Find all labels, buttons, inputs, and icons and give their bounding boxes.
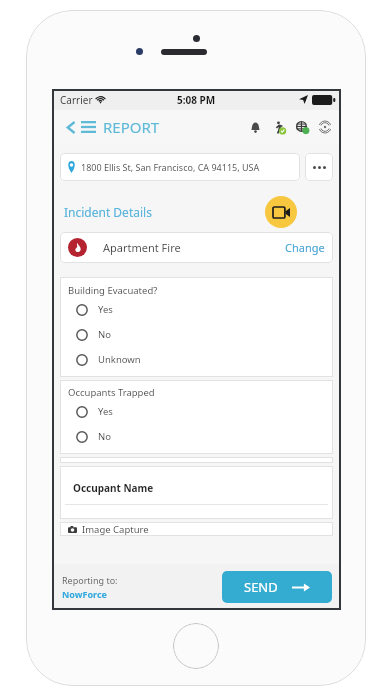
button[interactable]: No	[60, 322, 333, 347]
button[interactable]: 1800 Ellis St, San Francisco, CA 94115, …	[60, 153, 300, 181]
staticText: Yes	[98, 303, 113, 316]
staticText: Unknown	[98, 353, 141, 366]
button[interactable]: Signal	[315, 117, 335, 137]
button[interactable]: Yes	[60, 297, 333, 322]
staticText: Carrier	[60, 93, 93, 107]
staticText: Building Evacuated?	[68, 284, 158, 297]
button[interactable]: Notifications	[245, 117, 265, 137]
button[interactable]: Back	[60, 116, 82, 138]
button[interactable]: Image Capture	[60, 522, 333, 536]
button[interactable]: Record video	[265, 196, 297, 228]
staticText: Image Capture	[82, 523, 149, 536]
button[interactable]: SEND	[222, 571, 332, 603]
button[interactable]: Menu	[81, 117, 160, 137]
staticText: Yes	[98, 405, 113, 418]
staticText: Reporting to:	[62, 574, 118, 586]
button[interactable]: Apartment Fire	[60, 232, 333, 263]
button[interactable]: Yes	[60, 399, 333, 424]
staticText: NowForce	[62, 588, 107, 600]
button[interactable]: Network	[292, 117, 312, 137]
staticText: SEND	[244, 578, 278, 596]
button[interactable]: Unknown	[60, 347, 333, 372]
other: Menu	[81, 121, 96, 133]
button[interactable]: Change	[285, 240, 325, 255]
staticText: 1800 Ellis St, San Francisco, CA 94115, …	[81, 161, 260, 173]
staticText: Occupant Name	[73, 481, 154, 495]
staticText: Incident Details	[64, 204, 152, 220]
staticText: 5:08 PM	[177, 93, 216, 107]
button[interactable]: No	[60, 424, 333, 449]
staticText: Apartment Fire	[103, 240, 181, 255]
staticText: Occupants Trapped	[68, 386, 155, 399]
button[interactable]: Responder status	[269, 117, 289, 137]
button[interactable]: More options	[305, 153, 333, 181]
button[interactable]: Occupant Name	[60, 466, 333, 519]
staticText: No	[98, 430, 111, 443]
staticText: No	[98, 328, 111, 341]
staticText: REPORT	[103, 117, 160, 137]
